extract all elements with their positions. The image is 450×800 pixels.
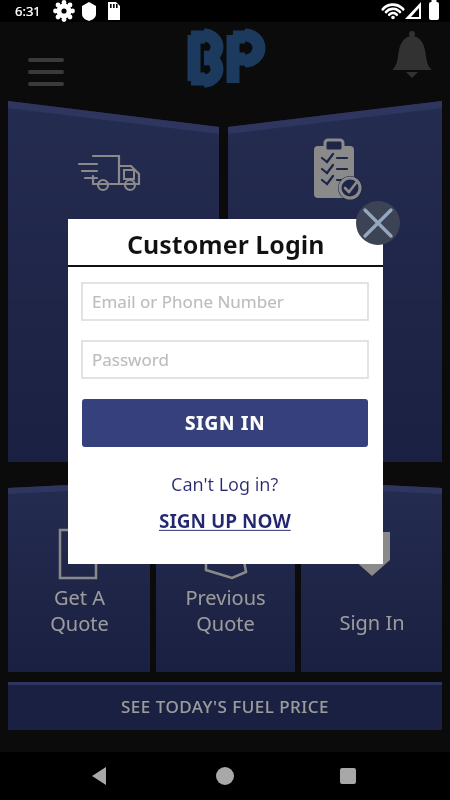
staticText: SIGN UP NOW: [159, 508, 291, 534]
button[interactable]: SEE TODAY'S FUEL PRICE: [8, 682, 442, 730]
staticText: Email or Phone Number: [92, 290, 284, 313]
button[interactable]: Can't Log in?: [82, 469, 368, 499]
button[interactable]: Close: [356, 201, 400, 245]
staticText: Sign In: [339, 609, 405, 636]
staticText: Get A Quote: [50, 584, 109, 636]
button[interactable]: Email or Phone Number: [82, 283, 368, 320]
staticText: SEE TODAY'S FUEL PRICE: [121, 695, 330, 718]
button[interactable]: Previous Quote: [156, 482, 295, 672]
button[interactable]: SIGN UP NOW: [82, 505, 368, 537]
staticText: 6:31: [15, 2, 41, 20]
staticText: Customer Login: [127, 227, 325, 261]
button[interactable]: Sign In: [301, 482, 442, 672]
button[interactable]: Notifications: [388, 34, 436, 82]
button[interactable]: Get A Quote: [8, 482, 150, 672]
button[interactable]: SIGN IN: [82, 399, 368, 447]
button[interactable]: Menu: [22, 40, 70, 76]
staticText: SIGN IN: [185, 410, 266, 436]
staticText: Can't Log in?: [171, 472, 279, 497]
button[interactable]: Password: [82, 341, 368, 378]
staticText: Password: [92, 348, 169, 371]
staticText: Previous Quote: [185, 584, 266, 636]
